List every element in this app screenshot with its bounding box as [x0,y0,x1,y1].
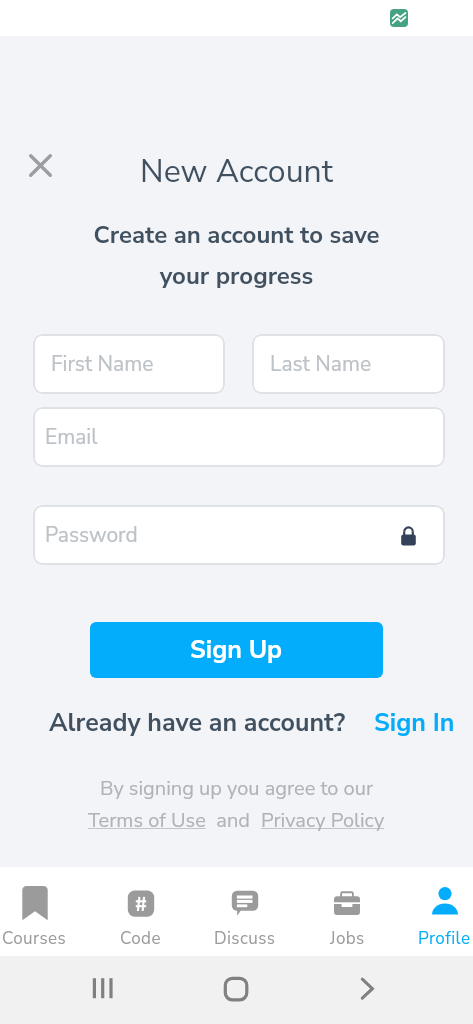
staticText: Sign Up [190,633,283,667]
button[interactable]: Terms of Use [88,807,206,834]
button[interactable]: Privacy Policy [261,807,385,834]
staticText: Courses [2,927,67,950]
staticText: Code [120,927,161,950]
staticText: Last Name [270,350,372,379]
staticText: Discuss [214,927,276,950]
button[interactable]: Code [120,867,161,956]
staticText: Profile [418,927,471,950]
staticText: Password [45,521,138,550]
staticText: First Name [51,350,154,379]
staticText: Email [45,423,98,452]
staticText: New Account [0,150,473,194]
button[interactable]: Discuss [214,867,276,956]
staticText: Create an account to save your progress [0,219,473,293]
button[interactable]: Profile [418,867,471,956]
staticText: Jobs [330,927,365,950]
staticText: Privacy Policy [261,807,385,834]
button[interactable]: Last Name [252,334,445,394]
button[interactable]: Sign Up [90,622,383,678]
button[interactable]: Courses [2,867,67,956]
staticText: By signing up you agree to our [0,775,473,802]
staticText: and [206,807,261,834]
button[interactable]: Password [33,505,445,565]
staticText: Sign In [374,706,455,740]
button[interactable]: Email [33,407,445,467]
staticText: Already have an account? [49,706,346,740]
button[interactable]: Jobs [329,867,365,956]
staticText: Terms of Use [88,807,206,834]
button[interactable]: First Name [33,334,225,394]
button[interactable]: Sign In [374,706,455,740]
button[interactable]: Close [19,144,61,186]
